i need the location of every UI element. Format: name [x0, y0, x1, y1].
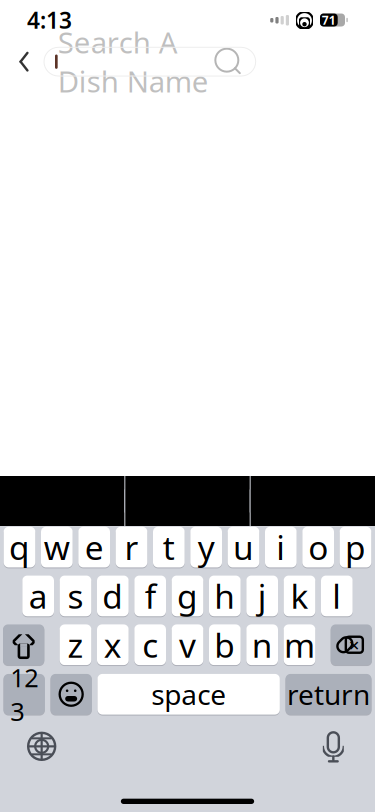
button[interactable]: I’m — [125, 476, 250, 526]
staticText: z — [67, 623, 83, 667]
button[interactable]: Back — [4, 42, 44, 82]
button[interactable]: Next keyboard — [20, 728, 63, 765]
staticText: l — [332, 574, 341, 618]
staticText: u — [233, 525, 254, 569]
button[interactable]: z — [60, 624, 91, 666]
button[interactable]: c — [134, 624, 166, 666]
staticText: y — [198, 525, 215, 569]
staticText: g — [177, 574, 198, 618]
button[interactable]: b — [209, 624, 241, 666]
staticText: 123 — [10, 661, 38, 728]
button[interactable]: x — [97, 624, 129, 666]
button[interactable]: m — [284, 624, 315, 666]
staticText: m — [284, 623, 315, 667]
staticText: r — [124, 525, 138, 569]
button[interactable]: Shift — [3, 624, 44, 666]
staticText: n — [252, 623, 273, 667]
button[interactable]: t — [153, 526, 185, 568]
staticText: w — [44, 525, 70, 569]
staticText: h — [214, 574, 235, 618]
staticText: t — [163, 525, 175, 569]
button[interactable]: w — [41, 526, 73, 568]
button[interactable]: k — [284, 575, 315, 617]
button[interactable]: l — [321, 575, 353, 617]
button[interactable]: 123 — [3, 673, 45, 715]
staticText: i — [276, 525, 285, 569]
button[interactable]: i — [265, 526, 297, 568]
staticText: 4:13 — [27, 5, 72, 35]
staticText: x — [104, 623, 122, 667]
button[interactable]: p — [340, 526, 371, 568]
button[interactable]: y — [190, 526, 222, 568]
button[interactable]: space — [97, 673, 280, 715]
staticText: return — [287, 676, 370, 713]
staticText: s — [67, 574, 83, 618]
staticText: p — [345, 525, 366, 569]
staticText: 71 — [322, 12, 336, 28]
staticText: v — [179, 623, 196, 667]
button[interactable]: u — [228, 526, 259, 568]
button[interactable]: d — [97, 575, 129, 617]
button[interactable]: j — [246, 575, 278, 617]
staticText: b — [214, 623, 235, 667]
button[interactable]: o — [302, 526, 334, 568]
staticText: q — [9, 525, 30, 569]
staticText: Search A Dish Name — [58, 23, 209, 101]
button[interactable]: Delete — [331, 624, 372, 666]
button[interactable]: v — [172, 624, 203, 666]
staticText: k — [290, 574, 308, 618]
button[interactable]: q — [4, 526, 35, 568]
button[interactable]: r — [116, 526, 147, 568]
staticText: j — [258, 574, 267, 618]
staticText: o — [308, 525, 328, 569]
button[interactable]: Search A Dish Name — [44, 47, 256, 76]
button[interactable]: a — [22, 575, 54, 617]
staticText: a — [29, 574, 48, 618]
button[interactable]: s — [60, 575, 91, 617]
staticText: f — [145, 574, 156, 618]
staticText: c — [142, 623, 158, 667]
staticText: × — [349, 632, 360, 657]
button[interactable]: e — [78, 526, 110, 568]
button[interactable]: n — [246, 624, 278, 666]
staticText: e — [85, 525, 104, 569]
button[interactable]: Emoji — [50, 673, 92, 715]
button[interactable]: Dictation — [312, 728, 355, 765]
staticText: space — [151, 676, 226, 713]
staticText: d — [102, 574, 123, 618]
button[interactable]: h — [209, 575, 241, 617]
button[interactable]: f — [134, 575, 166, 617]
button[interactable]: g — [172, 575, 203, 617]
button[interactable]: return — [285, 673, 371, 715]
